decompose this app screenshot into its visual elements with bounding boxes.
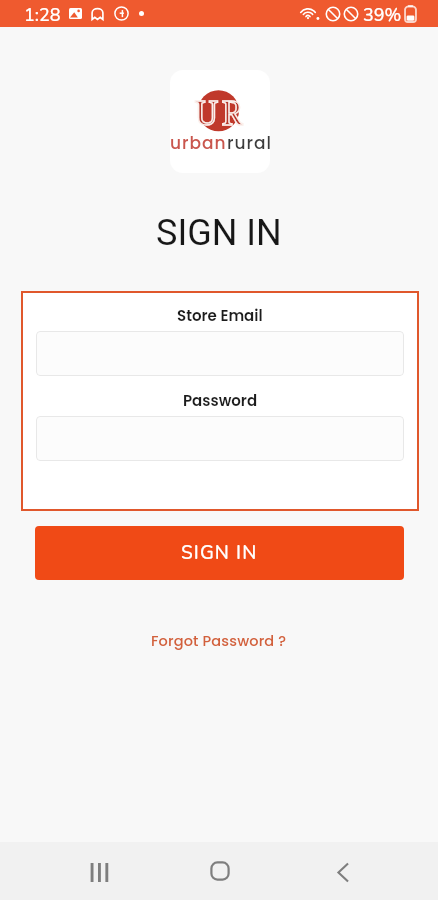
button[interactable] bbox=[36, 331, 404, 376]
staticText: Store Email bbox=[177, 305, 263, 326]
staticText: rural bbox=[227, 131, 270, 155]
staticText: UR bbox=[195, 91, 246, 135]
staticText: SIGN IN bbox=[156, 212, 282, 254]
button[interactable]: Forgot Password ? bbox=[141, 626, 297, 656]
button[interactable]: Back bbox=[318, 842, 367, 900]
button[interactable] bbox=[36, 416, 404, 461]
staticText: Forgot Password ? bbox=[151, 631, 287, 651]
staticText: Password bbox=[183, 390, 258, 411]
staticText: 1:28 bbox=[24, 3, 61, 28]
staticText: UR bbox=[195, 91, 246, 135]
button[interactable]: Recent apps bbox=[73, 842, 122, 900]
staticText: SIGN IN bbox=[181, 540, 258, 566]
staticText: urban bbox=[170, 131, 227, 155]
button[interactable]: SIGN IN bbox=[35, 526, 404, 580]
staticText: 39% bbox=[363, 3, 402, 28]
button[interactable]: Home bbox=[196, 842, 244, 900]
